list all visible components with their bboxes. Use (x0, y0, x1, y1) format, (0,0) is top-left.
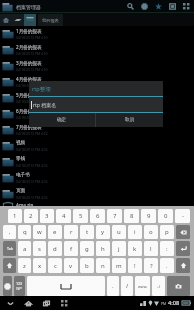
button[interactable]: n (96, 258, 110, 273)
button[interactable]: b (80, 258, 94, 273)
button[interactable]: i (128, 225, 142, 239)
button[interactable]: 6月份的报表 (0, 106, 194, 122)
button[interactable]: l (144, 241, 158, 256)
button[interactable]: Home (21, 297, 35, 310)
staticText: 7月份的报表 (16, 124, 42, 130)
button[interactable]: x (33, 258, 46, 273)
button[interactable]: 确定 (29, 113, 95, 127)
staticText: z (23, 262, 26, 270)
button[interactable]: 4 (56, 209, 71, 223)
button[interactable]: 2月份的报表 (0, 42, 194, 58)
button[interactable]: , (3, 225, 16, 239)
button[interactable]: 7月份的报表 (0, 122, 194, 138)
button[interactable]: j (112, 241, 126, 256)
button[interactable]: www. (135, 276, 150, 296)
button[interactable]: d (48, 241, 62, 256)
button[interactable]: 3月份的报表 (0, 58, 194, 74)
button[interactable]: 1 (8, 209, 22, 223)
button[interactable]: w (33, 225, 46, 239)
button[interactable]: k (128, 241, 142, 256)
button[interactable]: Voice input (167, 276, 190, 296)
button[interactable]: Shift (3, 258, 16, 273)
button[interactable]: u (112, 225, 126, 239)
button[interactable]: z (18, 258, 31, 273)
button[interactable]: 取消 (96, 113, 163, 127)
button[interactable]: : (160, 241, 174, 256)
button[interactable]: f (64, 241, 78, 256)
staticText: r (70, 228, 73, 236)
button[interactable]: 视频 (0, 138, 194, 154)
button[interactable]: 2 (24, 209, 38, 223)
button[interactable]: Screenshot (57, 297, 71, 310)
button[interactable]: SD card (12, 14, 24, 26)
staticText: 04/18/2013 PM 4:02 (16, 163, 48, 168)
button[interactable]: g (80, 241, 94, 256)
button[interactable]: . (107, 276, 119, 296)
button[interactable]: Hide keyboard (3, 297, 17, 310)
staticText: :-) (157, 284, 161, 289)
button[interactable]: 123 ?#* (14, 276, 25, 296)
button[interactable]: Keyboard settings (3, 276, 12, 296)
button[interactable]: r (64, 225, 78, 239)
button[interactable]: - (175, 209, 190, 223)
button[interactable]: e (48, 225, 62, 239)
staticText: 04/18/2013 PM 4:03 (16, 51, 48, 56)
button[interactable]: Current folder (24, 14, 36, 26)
button[interactable]: o (144, 225, 158, 239)
button[interactable]: t (80, 225, 94, 239)
staticText: 取消 (125, 117, 135, 123)
button[interactable]: Enter (176, 241, 190, 256)
button[interactable]: s (33, 241, 46, 256)
button[interactable]: Shift (176, 258, 190, 273)
button[interactable]: a (18, 241, 31, 256)
button[interactable]: Search (123, 0, 137, 13)
button[interactable]: Backspace (176, 225, 190, 239)
button[interactable]: 页面 (0, 186, 194, 202)
button[interactable]: 6 (90, 209, 105, 223)
button[interactable]: 7 (107, 209, 122, 223)
button[interactable]: c (48, 258, 62, 273)
button[interactable]: More options (179, 0, 193, 13)
staticText: v (69, 262, 73, 270)
button[interactable]: Settings (137, 0, 151, 13)
button[interactable]: Ama.zip (0, 202, 194, 206)
button[interactable]: 0 (158, 209, 173, 223)
button[interactable]: ! (128, 258, 142, 273)
button[interactable]: 8 (124, 209, 139, 223)
staticText: rtp 档案名 (33, 102, 57, 109)
button[interactable]: q (18, 225, 31, 239)
button[interactable]: / (121, 276, 133, 296)
staticText: g (85, 245, 89, 253)
button[interactable]: Space (27, 276, 105, 296)
button[interactable]: . (160, 258, 174, 273)
button[interactable]: h (96, 241, 110, 256)
button[interactable]: 3 (40, 209, 54, 223)
button[interactable]: v (64, 258, 78, 273)
staticText: 电子书 (16, 172, 30, 178)
button[interactable]: 5月份的报表 (0, 90, 194, 106)
button[interactable]: 9 (141, 209, 156, 223)
button[interactable]: Storage (165, 0, 179, 13)
button[interactable]: 零钱 (0, 154, 194, 170)
button[interactable]: Tab (3, 241, 16, 256)
button[interactable]: Home (0, 14, 12, 26)
button[interactable]: 我的报表 (38, 14, 63, 26)
button[interactable]: 电子书 (0, 170, 194, 186)
staticText: y (101, 228, 105, 236)
button[interactable]: ? (144, 258, 158, 273)
button[interactable]: p (160, 225, 174, 239)
button[interactable]: 1月份的报表 (0, 26, 194, 42)
button[interactable]: m (112, 258, 126, 273)
button[interactable]: :-) (152, 276, 165, 296)
staticText: : (166, 245, 168, 253)
button[interactable]: 4月份的报表 (0, 74, 194, 90)
button[interactable]: Recent apps (39, 297, 53, 310)
staticText: 3 (45, 212, 49, 220)
staticText: 04/18/2013 PM 4:03 (16, 35, 48, 40)
staticText: c (54, 262, 57, 270)
button[interactable]: Favourites (151, 0, 165, 13)
button[interactable]: 5 (73, 209, 88, 223)
staticText: www. (138, 284, 148, 289)
button[interactable]: y (96, 225, 110, 239)
staticText: 04/18/2013 PM 4:02 (16, 195, 48, 200)
